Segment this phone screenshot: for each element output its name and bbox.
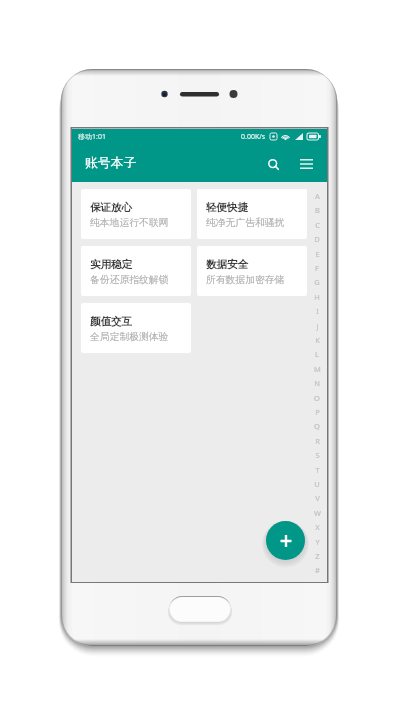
staticText: Z bbox=[315, 551, 320, 561]
button[interactable]: 数据安全 bbox=[197, 246, 307, 296]
staticText: U bbox=[314, 479, 320, 489]
button[interactable]: 颜值交互 bbox=[81, 303, 191, 353]
staticText: 轻便快捷 bbox=[206, 201, 248, 214]
staticText: N bbox=[314, 378, 320, 388]
staticText: H bbox=[314, 292, 320, 302]
staticText: 保证放心 bbox=[90, 201, 132, 214]
staticText: # bbox=[315, 565, 320, 575]
staticText: Y bbox=[315, 537, 320, 547]
staticText: W bbox=[314, 508, 321, 518]
staticText: O bbox=[314, 393, 320, 403]
staticText: 纯本地运行不联网 bbox=[90, 217, 169, 229]
staticText: Q bbox=[314, 421, 320, 431]
staticText: L bbox=[315, 349, 319, 359]
button[interactable]: Menu bbox=[289, 147, 323, 181]
staticText: V bbox=[315, 493, 320, 503]
staticText: C bbox=[315, 220, 320, 230]
staticText: 移动1:01 bbox=[78, 132, 106, 142]
button[interactable]: Index bbox=[309, 189, 325, 585]
staticText: E bbox=[315, 249, 320, 259]
staticText: F bbox=[315, 263, 319, 273]
button[interactable]: Search bbox=[256, 147, 290, 181]
staticText: 全局定制极测体验 bbox=[90, 331, 169, 343]
staticText: K bbox=[315, 335, 320, 345]
staticText: 0.00K/s bbox=[241, 132, 266, 142]
staticText: S bbox=[315, 450, 320, 460]
staticText: I bbox=[316, 306, 319, 316]
staticText: P bbox=[315, 407, 320, 417]
staticText: B bbox=[315, 205, 320, 215]
staticText: 账号本子 bbox=[85, 155, 137, 171]
button[interactable]: 轻便快捷 bbox=[197, 189, 307, 239]
staticText: 实用稳定 bbox=[90, 258, 132, 271]
staticText: 数据安全 bbox=[206, 258, 248, 271]
staticText: 所有数据加密存储 bbox=[206, 274, 285, 286]
staticText: T bbox=[315, 465, 320, 475]
staticText: R bbox=[315, 436, 320, 446]
button[interactable]: Add bbox=[266, 521, 305, 560]
staticText: A bbox=[315, 191, 320, 201]
staticText: X bbox=[315, 522, 320, 532]
staticText: 颜值交互 bbox=[90, 315, 132, 328]
staticText: M bbox=[314, 364, 321, 374]
button[interactable]: 实用稳定 bbox=[81, 246, 191, 296]
staticText: J bbox=[316, 321, 319, 331]
staticText: 纯净无广告和骚扰 bbox=[206, 217, 285, 229]
staticText: 备份还原指纹解锁 bbox=[90, 274, 169, 286]
staticText: G bbox=[314, 277, 320, 287]
staticText: D bbox=[314, 234, 320, 244]
button[interactable]: 保证放心 bbox=[81, 189, 191, 239]
